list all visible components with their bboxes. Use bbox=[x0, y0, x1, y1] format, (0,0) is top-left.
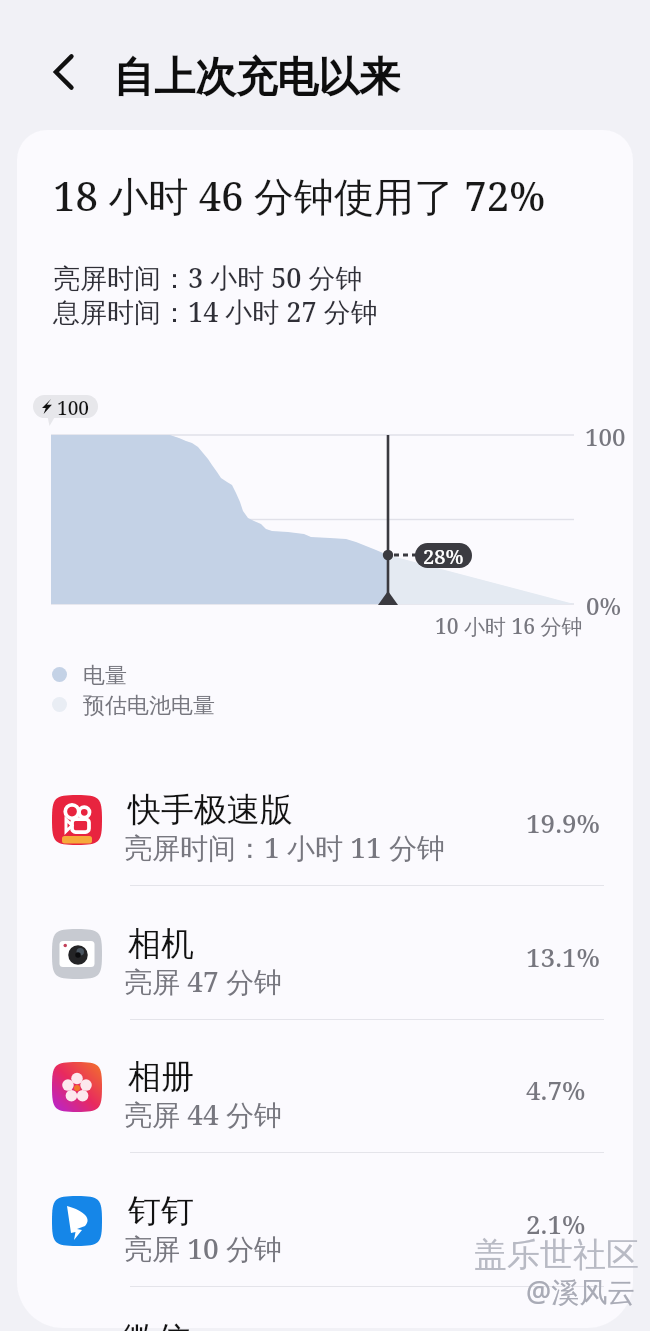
staticText: 预估电池电量 bbox=[83, 692, 215, 720]
staticText: 0% bbox=[586, 589, 622, 622]
staticText: 相册 bbox=[128, 1056, 194, 1098]
button[interactable]: 快手极速版 bbox=[17, 754, 633, 887]
staticText: 相机 bbox=[128, 923, 194, 965]
staticText: 微信 bbox=[122, 1318, 190, 1331]
staticText: 19.9% bbox=[526, 805, 600, 840]
button[interactable]: 相机 bbox=[17, 888, 633, 1021]
staticText: 亮屏 44 分钟 bbox=[124, 1095, 282, 1133]
staticText: 快手极速版 bbox=[128, 789, 293, 831]
staticText: 息屏时间：14 小时 27 分钟 bbox=[53, 293, 378, 330]
staticText: 电量 bbox=[83, 662, 127, 690]
staticText: 亮屏时间：3 小时 50 分钟 bbox=[53, 259, 363, 296]
staticText: 亮屏 10 分钟 bbox=[124, 1229, 282, 1267]
staticText: 10 小时 16 分钟 bbox=[435, 612, 583, 641]
staticText: 100 bbox=[57, 395, 89, 418]
staticText: 钉钉 bbox=[128, 1190, 194, 1232]
staticText: 28% bbox=[423, 543, 464, 568]
button[interactable]: Back bbox=[40, 48, 87, 95]
button[interactable]: 钉钉 bbox=[17, 1155, 633, 1288]
staticText: 13.1% bbox=[526, 939, 600, 974]
staticText: 100 bbox=[585, 420, 626, 453]
staticText: 自上次充电以来 bbox=[113, 52, 400, 104]
button[interactable]: 相册 bbox=[17, 1021, 633, 1154]
staticText: 亮屏 47 分钟 bbox=[124, 962, 282, 1000]
staticText: 盖乐世社区 bbox=[474, 1234, 639, 1276]
staticText: 2.1% bbox=[526, 1206, 586, 1241]
staticText: @溪风云 bbox=[526, 1272, 636, 1310]
staticText: 4.7% bbox=[526, 1072, 586, 1107]
staticText: 18 小时 46 分钟使用了 72% bbox=[53, 168, 546, 223]
staticText: 亮屏时间：1 小时 11 分钟 bbox=[124, 828, 445, 866]
